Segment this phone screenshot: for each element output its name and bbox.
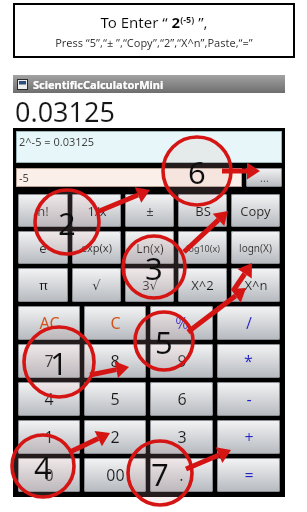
button[interactable]: C (84, 306, 146, 340)
button[interactable]: 2 (84, 420, 146, 454)
button[interactable]: Copy (231, 194, 280, 227)
staticText: 4 (34, 446, 52, 486)
staticText: 3√ (142, 276, 158, 294)
staticText: - (246, 388, 252, 410)
button[interactable]: Ln(x) (125, 231, 174, 264)
staticText: Ln(x) (136, 240, 164, 256)
staticText: Press “5”,“± ”,“Copy”,“2”,“X^n”,Paste,“=… (55, 35, 253, 50)
staticText: . (179, 464, 184, 486)
button[interactable]: log10(x) (178, 231, 227, 264)
staticText: logn(X) (239, 241, 272, 255)
staticText: √ (92, 278, 101, 293)
staticText: -5 (19, 170, 29, 185)
staticText: exp(x) (81, 240, 112, 255)
button[interactable]: - (217, 382, 280, 416)
staticText: 3 (145, 247, 163, 287)
staticText: % (175, 312, 189, 334)
staticText: ScientificCalculatorMini (33, 77, 164, 92)
staticText: 8 (110, 350, 120, 372)
button[interactable]: 7 (18, 344, 80, 378)
button[interactable]: 5 (84, 382, 146, 416)
staticText: + (244, 426, 254, 448)
button[interactable]: More options (246, 168, 282, 187)
button[interactable]: % (150, 306, 213, 340)
button[interactable]: X^2 (178, 268, 227, 302)
staticText: = (244, 464, 254, 486)
button[interactable]: + (217, 420, 280, 454)
staticText: 0.03125 (15, 93, 115, 128)
staticText: 1/x (87, 202, 107, 220)
staticText: 5 (110, 388, 120, 410)
staticText: 4 (44, 388, 54, 410)
staticText: 1 (44, 426, 54, 448)
button[interactable]: X^n (231, 268, 280, 302)
staticText: 6 (188, 151, 206, 191)
staticText: 5 (155, 321, 173, 361)
staticText: 7 (151, 453, 169, 493)
staticText: Copy (240, 202, 271, 220)
staticText: * (244, 350, 253, 372)
staticText: C (110, 312, 121, 334)
button[interactable]: 4 (18, 382, 80, 416)
button[interactable]: logn(X) (231, 231, 280, 264)
button[interactable]: = (217, 458, 280, 492)
button[interactable]: π (18, 268, 68, 302)
staticText: 3 (177, 426, 187, 448)
button[interactable]: . (150, 458, 213, 492)
staticText: AC (39, 312, 60, 334)
staticText: 1 (50, 342, 68, 382)
button[interactable]: 00 (84, 458, 146, 492)
staticText: ... (260, 170, 269, 185)
staticText: 6 (177, 388, 187, 410)
staticText: 9 (177, 350, 187, 372)
button[interactable]: / (217, 306, 280, 340)
staticText: To Enter “ 2(-5) ”, (100, 12, 208, 32)
button[interactable]: √ (72, 268, 121, 302)
staticText: ± (146, 202, 154, 220)
button[interactable]: e (18, 231, 68, 264)
button[interactable]: 8 (84, 344, 146, 378)
button[interactable]: exp(x) (72, 231, 121, 264)
button[interactable]: * (217, 344, 280, 378)
staticText: X^n (244, 276, 268, 294)
staticText: 2 (58, 202, 76, 242)
button[interactable]: AC (18, 306, 80, 340)
staticText: 7 (44, 350, 54, 372)
button[interactable]: 1 (18, 420, 80, 454)
button[interactable]: 0 (18, 458, 80, 492)
staticText: e (39, 239, 47, 257)
button[interactable]: ± (125, 194, 174, 227)
button[interactable]: 9 (150, 344, 213, 378)
staticText: 00 (106, 464, 125, 486)
staticText: 0 (44, 464, 54, 486)
button[interactable]: n! (18, 194, 68, 227)
staticText: n! (37, 202, 49, 220)
button[interactable]: 3√ (125, 268, 174, 302)
staticText: log10(x) (186, 242, 220, 254)
staticText: 2^-5 = 0.03125 (19, 134, 95, 149)
button[interactable]: -5 (16, 168, 242, 187)
button[interactable]: 3 (150, 420, 213, 454)
staticText: 2 (110, 426, 120, 448)
button[interactable]: BS (178, 194, 227, 227)
button[interactable]: 6 (150, 382, 213, 416)
staticText: π (39, 276, 48, 294)
staticText: / (246, 312, 252, 334)
staticText: BS (195, 202, 211, 220)
staticText: X^2 (191, 276, 214, 294)
button[interactable]: 1/x (72, 194, 121, 227)
